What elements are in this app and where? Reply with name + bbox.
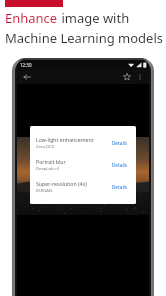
button[interactable]: Back bbox=[20, 70, 33, 83]
staticText: Details bbox=[112, 140, 128, 146]
button[interactable]: Super-resolution (4x) bbox=[30, 176, 136, 198]
button[interactable]: More options bbox=[133, 70, 146, 83]
staticText: Details bbox=[112, 184, 128, 190]
button[interactable]: Portrait blur bbox=[30, 154, 136, 176]
staticText: Low-light enhancement bbox=[36, 136, 94, 143]
staticText: Super-resolution (4x) bbox=[36, 180, 87, 187]
staticText: Enhance bbox=[5, 9, 58, 27]
staticText: Zero-DCE bbox=[36, 144, 55, 150]
staticText: ESRGAN bbox=[36, 188, 53, 194]
staticText: Machine Learning models bbox=[5, 29, 163, 47]
staticText: DeepLab v3 bbox=[36, 166, 60, 172]
button[interactable]: Details bbox=[110, 183, 130, 191]
button[interactable]: Favorite bbox=[120, 70, 133, 83]
staticText: Portrait blur bbox=[36, 158, 66, 165]
button[interactable]: Low-light enhancement bbox=[30, 132, 136, 154]
staticText: Details bbox=[112, 162, 128, 168]
button[interactable]: Details bbox=[110, 161, 130, 169]
button[interactable]: Details bbox=[110, 139, 130, 147]
staticText: image with bbox=[58, 9, 130, 27]
staticText: 12:30 bbox=[20, 62, 32, 68]
